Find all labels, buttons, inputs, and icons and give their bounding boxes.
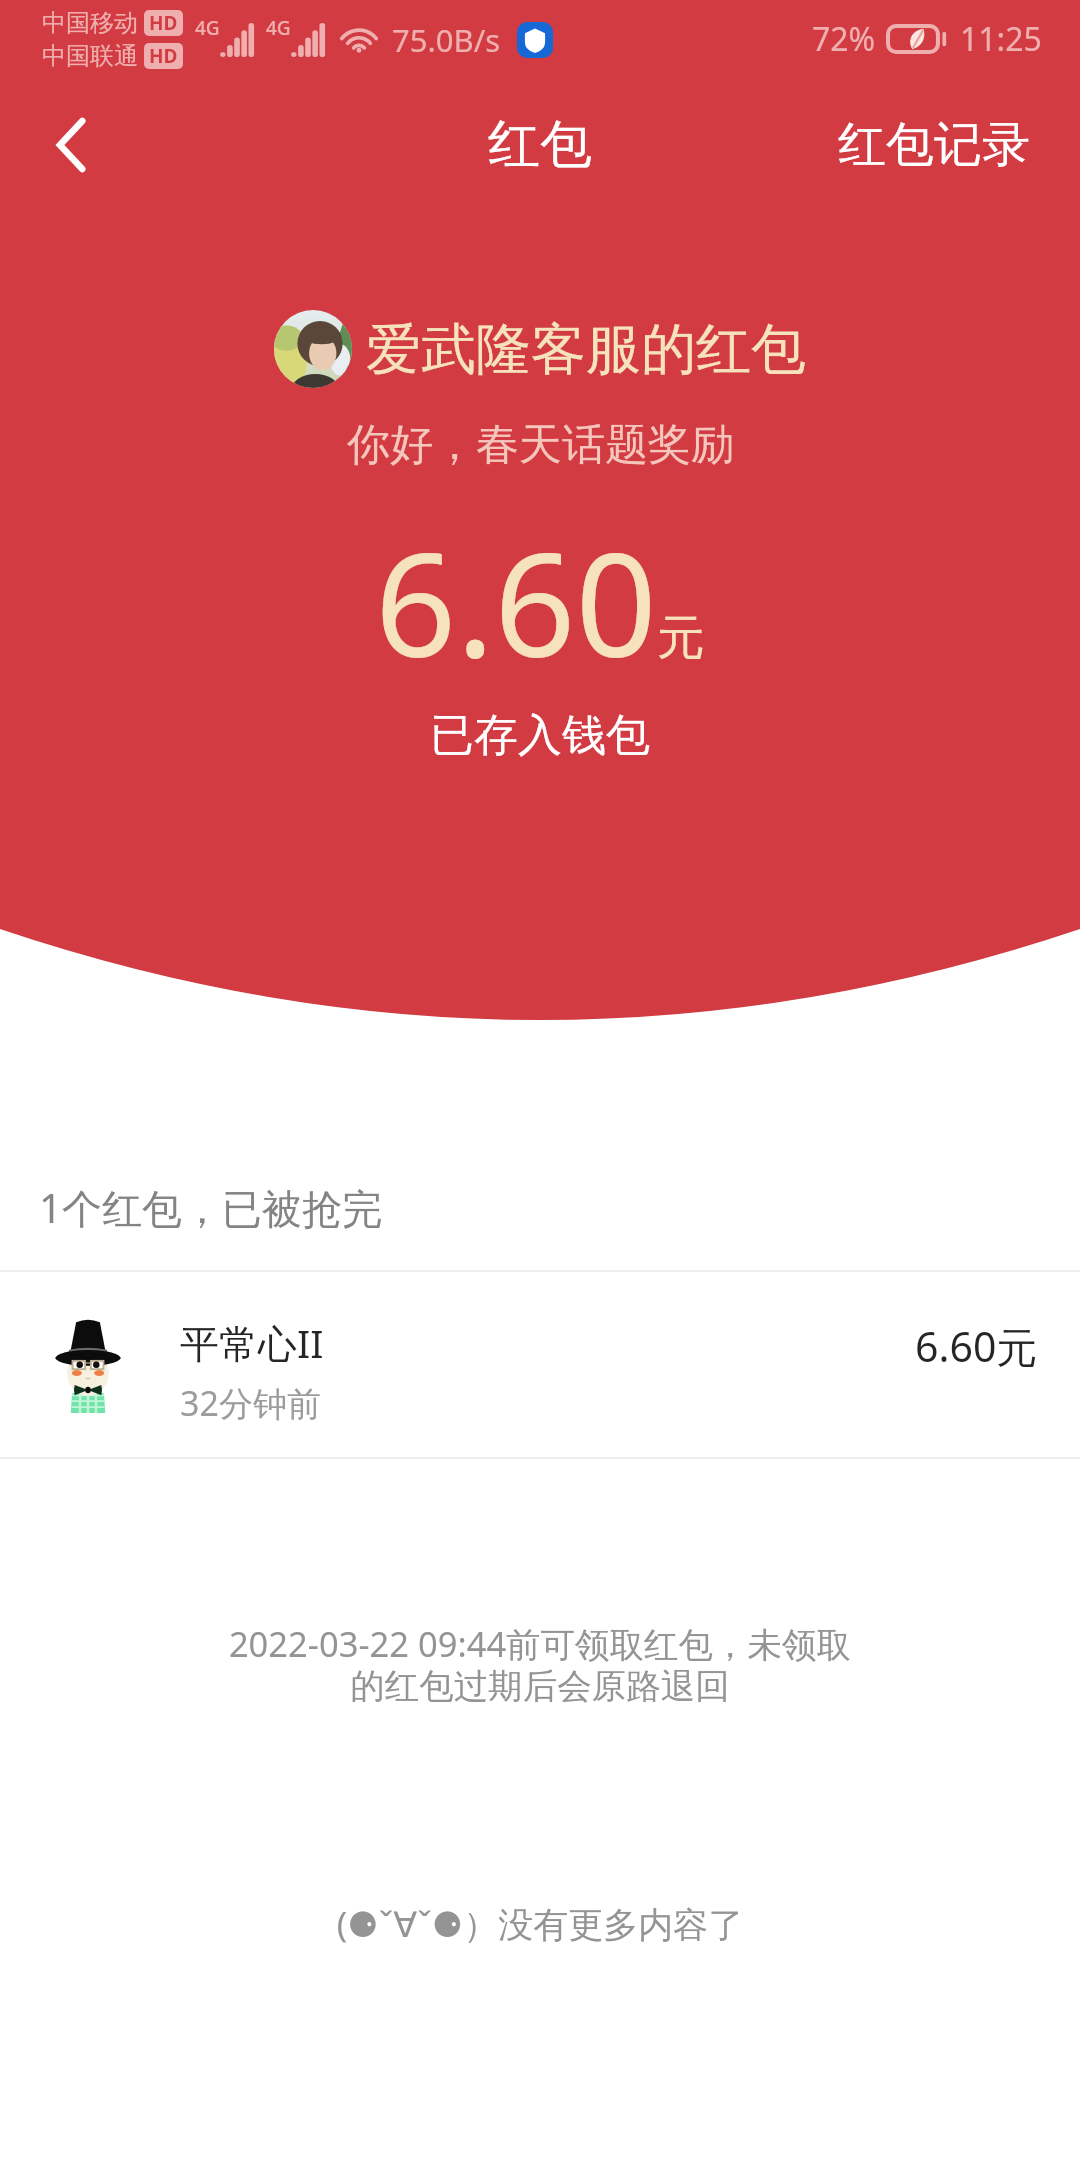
staticText: 中国联通 xyxy=(42,41,138,71)
staticText: HD xyxy=(149,43,178,69)
staticText: (⚈ˇ∀ˇ⚈）没有更多内容了 xyxy=(0,1900,1080,1948)
staticText: 4G xyxy=(195,15,220,41)
staticText: 已存入钱包 xyxy=(430,708,650,763)
staticText: 32分钟前 xyxy=(180,1380,321,1426)
staticText: 75.0B/s xyxy=(392,19,501,61)
staticText: 中国移动 xyxy=(42,8,138,38)
staticText: HD xyxy=(149,10,178,36)
staticText: 平常心II xyxy=(180,1316,324,1369)
staticText: 你好，春天话题奖励 xyxy=(347,418,734,472)
staticText: 红包 xyxy=(488,112,592,178)
staticText: 1个红包，已被抢完 xyxy=(39,1180,382,1235)
staticText: 72% xyxy=(812,17,876,61)
staticText: 6.60元 xyxy=(915,1318,1038,1374)
staticText: 爱武隆客服的红包 xyxy=(366,315,806,384)
staticText: 2022-03-22 09:44前可领取红包，未领取 的红包过期后会原路退回 xyxy=(0,1620,1080,1708)
staticText: 红包记录 xyxy=(838,115,1030,175)
staticText: 4G xyxy=(266,15,291,41)
button[interactable]: Back xyxy=(18,95,118,195)
staticText: 11:25 xyxy=(960,17,1042,61)
staticText: 6.60 xyxy=(375,505,657,698)
staticText: 元 xyxy=(657,608,705,668)
button[interactable]: 红包记录 xyxy=(788,91,1080,199)
button[interactable]: 平常心II xyxy=(0,1271,1080,1457)
